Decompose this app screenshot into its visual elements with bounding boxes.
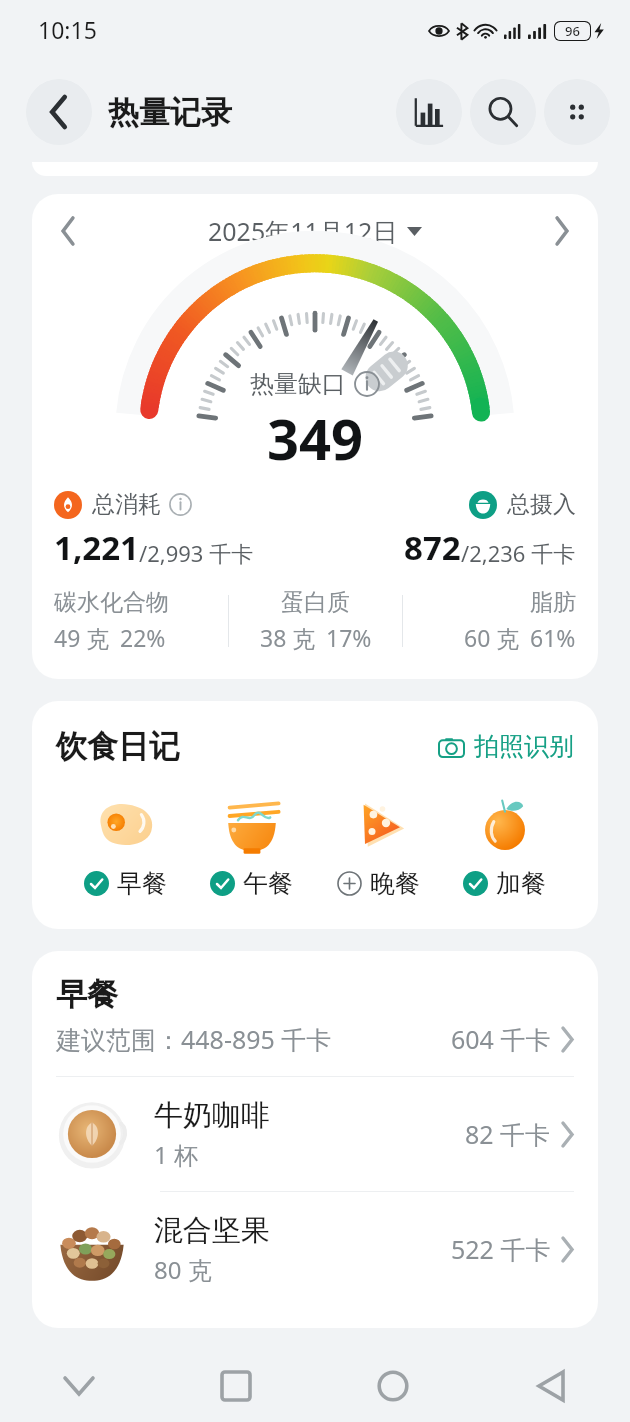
staticText: 加餐: [496, 868, 546, 899]
staticText: 22%: [120, 622, 166, 653]
staticText: 热量缺口: [250, 369, 346, 399]
button[interactable]: 早餐: [78, 788, 173, 899]
staticText: 蛋白质: [281, 588, 350, 617]
staticText: 80 克: [154, 1253, 212, 1286]
button[interactable]: Hide: [0, 1350, 157, 1422]
staticText: 604 千卡: [451, 1022, 551, 1056]
button[interactable]: Next day: [534, 203, 590, 259]
staticText: 1 杯: [154, 1138, 198, 1171]
button[interactable]: Search: [470, 79, 536, 145]
staticText: 拍照识别: [474, 731, 574, 762]
button[interactable]: 混合坚果: [32, 1192, 598, 1306]
staticText: /2,236 千卡: [461, 538, 576, 568]
staticText: 61%: [530, 622, 576, 653]
staticText: 热量记录: [108, 93, 232, 132]
staticText: 10:15: [38, 14, 97, 45]
staticText: 522 千卡: [451, 1232, 551, 1266]
button[interactable]: Back: [26, 79, 92, 145]
staticText: /2,993 千卡: [139, 538, 254, 568]
staticText: 建议范围：448-895 千卡: [56, 1022, 332, 1056]
other: Info: [354, 371, 380, 397]
button[interactable]: 加餐: [457, 788, 552, 899]
staticText: 晚餐: [370, 868, 420, 899]
staticText: 总消耗: [92, 490, 161, 519]
staticText: 38 克: [260, 622, 316, 653]
staticText: 1,221: [54, 525, 139, 570]
button[interactable]: 午餐: [204, 788, 299, 899]
button[interactable]: 牛奶咖啡: [32, 1077, 598, 1191]
staticText: 碳水化合物: [54, 588, 169, 617]
button[interactable]: 早餐: [32, 975, 598, 1056]
staticText: 96: [565, 22, 580, 40]
staticText: 午餐: [243, 868, 293, 899]
button[interactable]: More options: [544, 79, 610, 145]
button[interactable]: Previous day: [40, 203, 96, 259]
other: Info: [169, 493, 192, 516]
staticText: 17%: [326, 622, 372, 653]
staticText: 60 克: [464, 622, 520, 653]
staticText: 脂肪: [530, 588, 576, 617]
button[interactable]: 拍照识别: [438, 731, 574, 762]
staticText: 2025年11月12日: [208, 214, 398, 248]
button[interactable]: 晚餐: [331, 788, 426, 899]
staticText: 早餐: [56, 975, 118, 1014]
staticText: 82 千卡: [465, 1117, 551, 1151]
button[interactable]: Home: [314, 1350, 472, 1422]
staticText: 牛奶咖啡: [154, 1097, 270, 1134]
staticText: 早餐: [117, 868, 167, 899]
staticText: 49 克: [54, 622, 110, 653]
button[interactable]: Back: [472, 1350, 630, 1422]
button[interactable]: Recents: [157, 1350, 314, 1422]
staticText: 饮食日记: [56, 727, 180, 766]
staticText: 混合坚果: [154, 1212, 270, 1249]
staticText: 总摄入: [507, 490, 576, 519]
button[interactable]: 2025年11月12日: [208, 214, 422, 248]
button[interactable]: Statistics: [396, 79, 462, 145]
staticText: 349: [267, 400, 364, 476]
staticText: 872: [404, 525, 461, 570]
